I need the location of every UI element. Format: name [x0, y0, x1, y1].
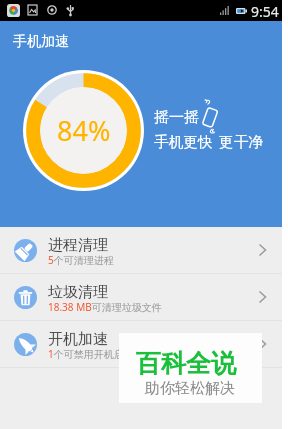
- staticText: 更干净: [219, 133, 264, 152]
- button[interactable]: 垃圾清理: [0, 274, 282, 320]
- staticText: 助你轻松解决: [145, 379, 235, 398]
- staticText: 1个可禁用开机启动项: [48, 347, 144, 361]
- button[interactable]: 开机加速: [0, 321, 282, 367]
- button[interactable]: 进程清理: [0, 227, 282, 273]
- staticText: 9:54: [251, 2, 279, 21]
- staticText: 开机加速: [48, 330, 108, 349]
- staticText: 垃圾清理: [48, 283, 108, 302]
- staticText: 5个可清理进程: [48, 253, 114, 267]
- staticText: 18.38 MB可清理垃圾文件: [48, 300, 162, 314]
- staticText: 百科全说: [136, 348, 236, 379]
- staticText: 手机加速: [13, 33, 69, 51]
- staticText: 84%: [57, 112, 111, 149]
- staticText: 进程清理: [48, 236, 108, 255]
- staticText: 手机更快: [154, 133, 213, 152]
- staticText: 摇一摇: [154, 108, 199, 127]
